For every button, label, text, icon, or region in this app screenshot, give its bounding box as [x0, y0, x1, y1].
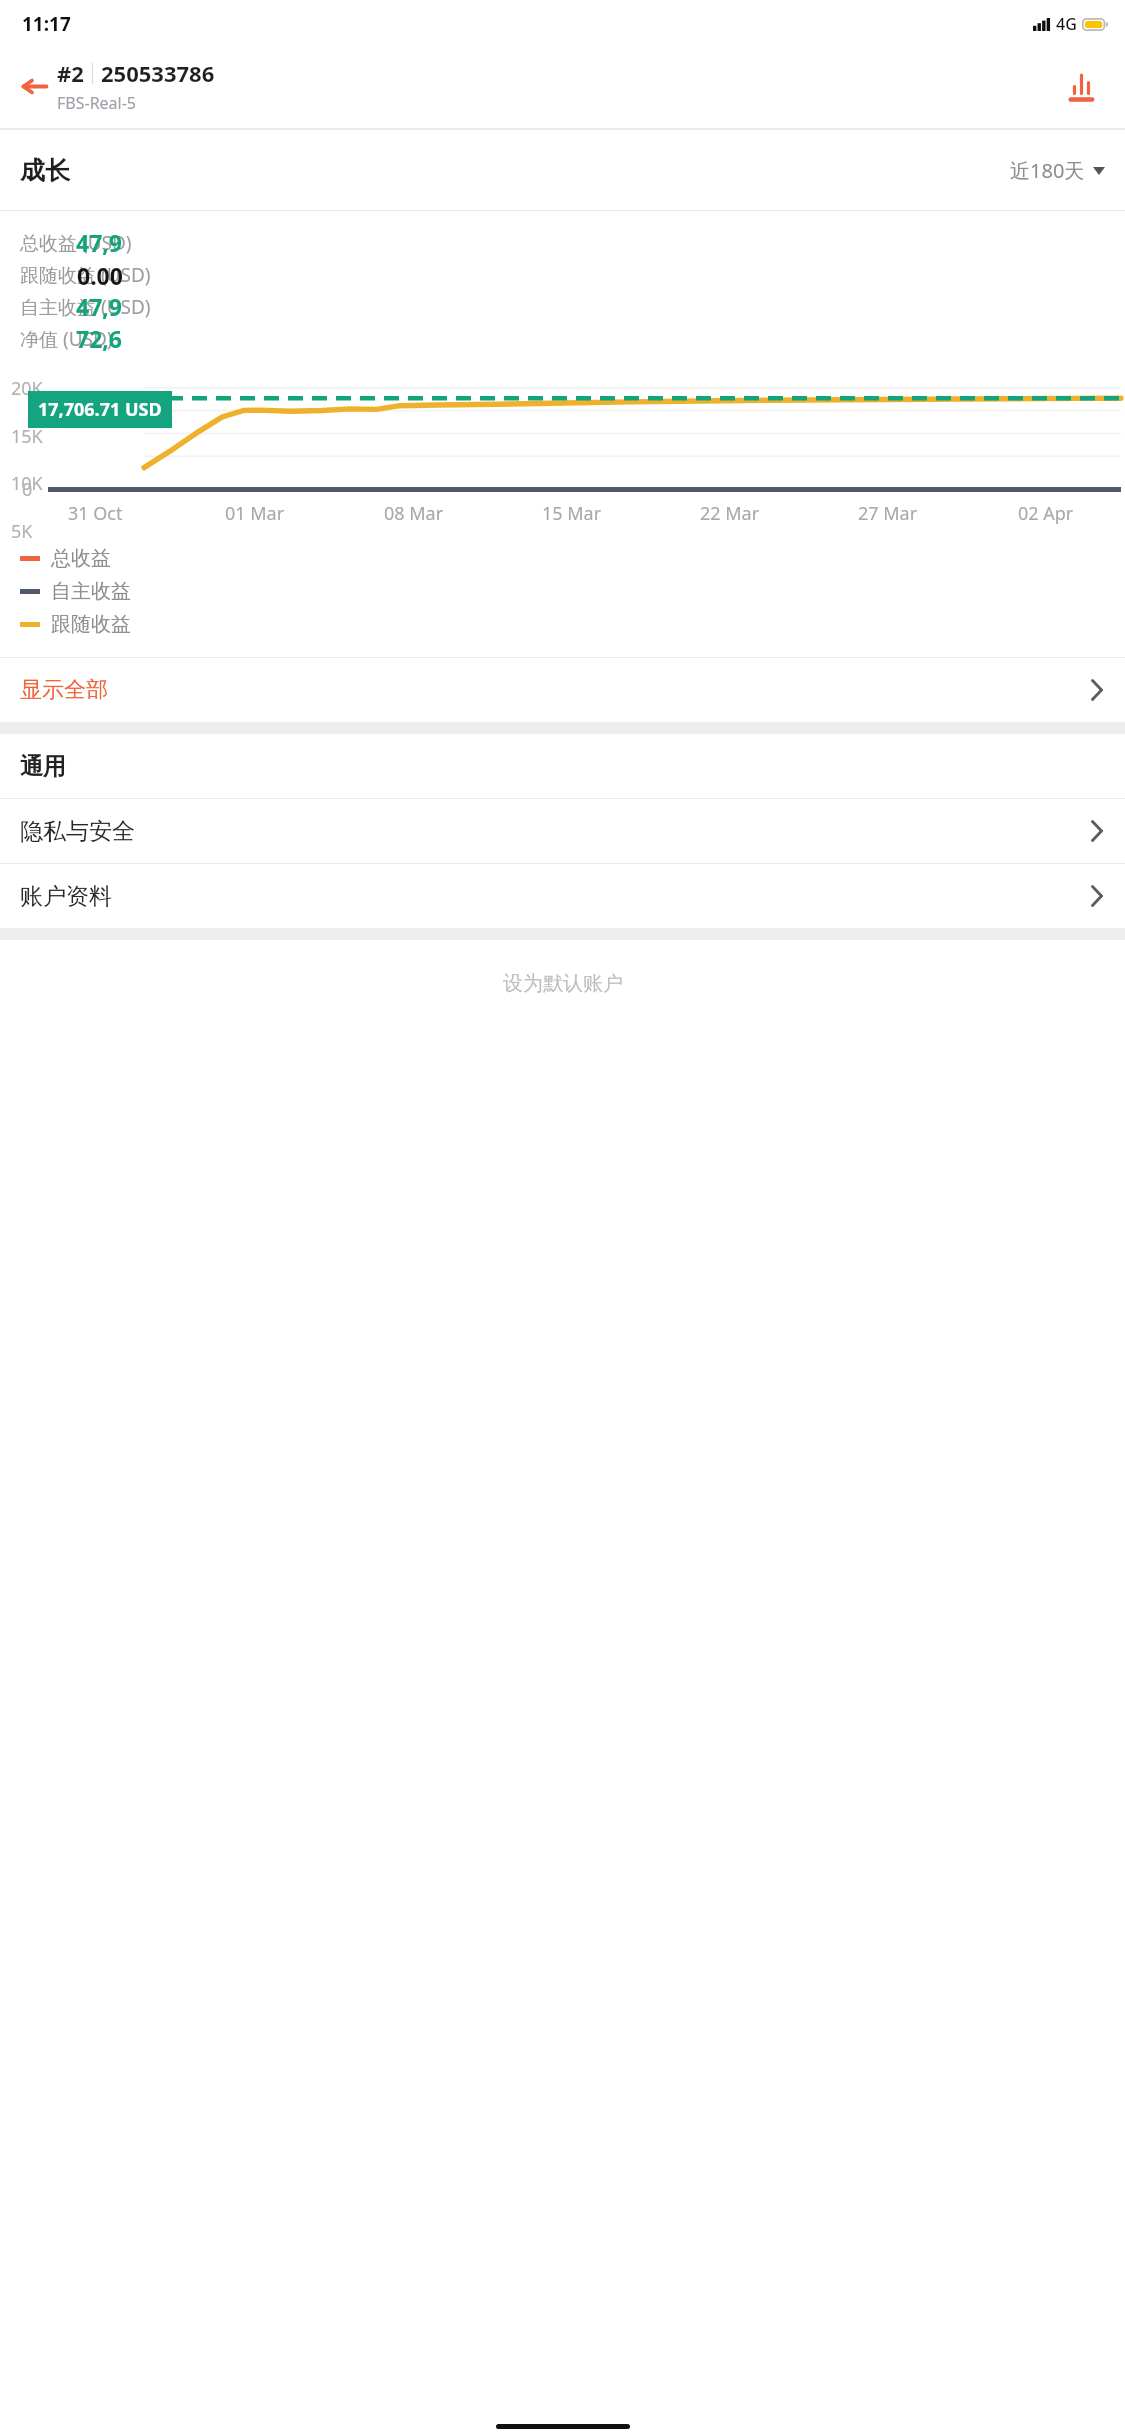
staticText: 账户资料 [20, 882, 112, 911]
staticText: 01 Mar [225, 501, 285, 526]
staticText: 250533786 [101, 58, 215, 88]
staticText: 成长 [20, 155, 70, 186]
staticText: 02 Apr [1018, 501, 1074, 526]
staticText: 5K [11, 519, 33, 542]
staticText: 跟随收益 (USD) [20, 262, 151, 288]
staticText: 总收益 (USD) [20, 230, 132, 256]
staticText: 隐私与安全 [20, 817, 135, 846]
staticText: 自主收益 [51, 579, 131, 604]
staticText: 显示全部 [20, 676, 108, 704]
staticText: 4G [1056, 13, 1077, 35]
staticText: 20K [11, 376, 43, 401]
staticText: 15 Mar [542, 501, 602, 526]
staticText: 47,919.79 [76, 291, 123, 323]
staticText: 27 Mar [858, 501, 918, 526]
staticText: 11:17 [22, 11, 71, 37]
staticText: 自主收益 (USD) [20, 294, 151, 320]
button[interactable]: Statistics [1059, 64, 1103, 108]
staticText: 设为默认账户 [503, 971, 623, 996]
staticText: 31 Oct [68, 501, 123, 526]
staticText: #2 [57, 58, 84, 88]
button[interactable]: 显示全部 [0, 658, 1125, 722]
staticText: 净值 (USD) [20, 326, 113, 352]
staticText: FBS-Real-5 [57, 92, 137, 114]
staticText: 22 Mar [700, 501, 760, 526]
staticText: 47,908.15 [76, 227, 123, 259]
button[interactable]: Back [12, 64, 56, 108]
staticText: 08 Mar [384, 501, 444, 526]
staticText: 通用 [20, 752, 66, 781]
staticText: 跟随收益 [51, 612, 131, 637]
staticText: 0 [22, 477, 33, 501]
staticText: 15K [11, 424, 43, 449]
staticText: 0.00 [77, 260, 123, 291]
button[interactable]: 账户资料 [0, 864, 1125, 928]
staticText: 10K [11, 471, 43, 496]
button[interactable]: 隐私与安全 [0, 799, 1125, 863]
staticText: 近180天 [1010, 157, 1085, 184]
button[interactable]: 近180天 [1010, 157, 1105, 184]
staticText: 总收益 [51, 546, 111, 571]
button[interactable]: 设为默认账户 [0, 960, 1125, 1006]
staticText: 72,671.15 [76, 323, 123, 355]
staticText: 17,706.71 USD [38, 397, 162, 422]
